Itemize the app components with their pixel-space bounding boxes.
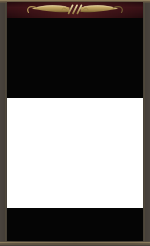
button[interactable]: App crest <box>7 2 143 18</box>
